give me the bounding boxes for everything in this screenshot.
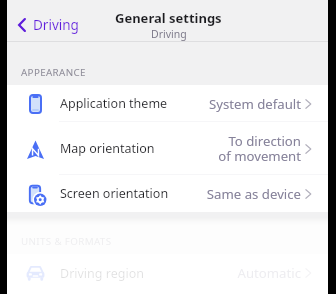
staticText: To direction of movement xyxy=(218,132,301,165)
staticText: Driving xyxy=(151,27,187,41)
staticText: Driving region xyxy=(60,265,144,282)
button[interactable]: Application theme xyxy=(7,85,328,122)
staticText: Same as device xyxy=(206,185,301,203)
staticText: General settings xyxy=(115,9,222,27)
staticText: Screen orientation xyxy=(60,185,169,202)
staticText: Application theme xyxy=(60,95,168,112)
button[interactable]: Screen orientation xyxy=(7,175,328,212)
staticText: Driving xyxy=(33,16,79,34)
staticText: UNITS & FORMATS xyxy=(21,235,112,248)
staticText: System default xyxy=(208,95,301,113)
staticText: Automatic xyxy=(237,264,301,282)
button[interactable]: Map orientation xyxy=(7,122,328,175)
button[interactable]: Driving region xyxy=(7,254,328,292)
staticText: Map orientation xyxy=(60,140,155,157)
button[interactable]: Driving xyxy=(13,10,85,40)
staticText: APPEARANCE xyxy=(21,66,86,79)
